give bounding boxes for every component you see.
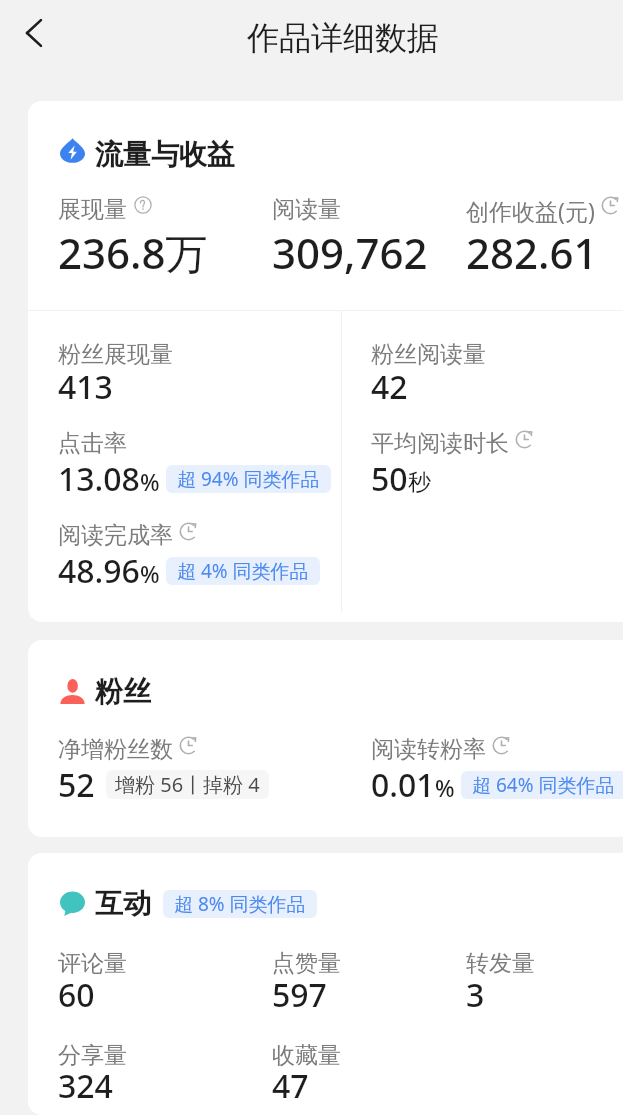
staticText: 3 <box>466 973 485 1017</box>
staticText: 13.08 <box>58 457 140 501</box>
button[interactable]: 超 4% 同类作品 <box>166 557 320 585</box>
staticText: 点击率 <box>58 429 127 458</box>
button[interactable]: 超 64% 同类作品 <box>461 771 623 799</box>
staticText: 236.8万 <box>58 224 208 281</box>
staticText: 创作收益(元) <box>466 195 595 226</box>
staticText: 0.01 <box>371 763 435 807</box>
staticText: 309,762 <box>272 224 428 281</box>
staticText: % <box>140 466 160 497</box>
staticText: 324 <box>58 1064 113 1108</box>
button[interactable]: Back <box>10 9 58 57</box>
staticText: 秒 <box>408 468 431 497</box>
staticText: 阅读转粉率 <box>371 735 486 764</box>
button[interactable]: 流量与收益 <box>60 137 235 172</box>
staticText: 42 <box>371 365 408 409</box>
staticText: 点赞量 <box>272 949 341 978</box>
staticText: 收藏量 <box>272 1041 341 1070</box>
staticText: % <box>140 558 160 589</box>
staticText: 展现量 <box>58 195 127 224</box>
button[interactable]: 超 8% 同类作品 <box>163 890 317 918</box>
staticText: 50 <box>371 457 408 501</box>
button[interactable]: 互动 <box>60 886 317 921</box>
staticText: 282.61 <box>466 224 598 281</box>
staticText: 阅读量 <box>272 195 341 224</box>
staticText: 52 <box>58 763 95 807</box>
staticText: 超 4% 同类作品 <box>177 558 309 584</box>
staticText: 净增粉丝数 <box>58 735 173 764</box>
staticText: 47 <box>272 1064 309 1108</box>
staticText: 粉丝展现量 <box>58 340 173 369</box>
staticText: 597 <box>272 973 327 1017</box>
staticText: 48.96 <box>58 549 140 593</box>
button[interactable]: 粉丝 <box>60 674 151 709</box>
staticText: 流量与收益 <box>95 137 235 172</box>
staticText: 超 8% 同类作品 <box>174 891 306 917</box>
button[interactable]: 超 94% 同类作品 <box>166 465 331 493</box>
staticText: 评论量 <box>58 949 127 978</box>
staticText: 超 94% 同类作品 <box>177 466 320 492</box>
staticText: 增粉 56丨掉粉 4 <box>115 771 260 798</box>
staticText: 转发量 <box>466 949 535 978</box>
staticText: 粉丝 <box>95 674 151 709</box>
staticText: 413 <box>58 365 113 409</box>
staticText: 粉丝阅读量 <box>371 340 486 369</box>
staticText: 平均阅读时长 <box>371 429 509 458</box>
staticText: 60 <box>58 973 95 1017</box>
staticText: 作品详细数据 <box>247 18 439 58</box>
staticText: 超 64% 同类作品 <box>472 772 615 798</box>
staticText: 分享量 <box>58 1041 127 1070</box>
staticText: % <box>435 772 455 803</box>
staticText: 阅读完成率 <box>58 521 173 550</box>
staticText: 互动 <box>95 886 151 921</box>
